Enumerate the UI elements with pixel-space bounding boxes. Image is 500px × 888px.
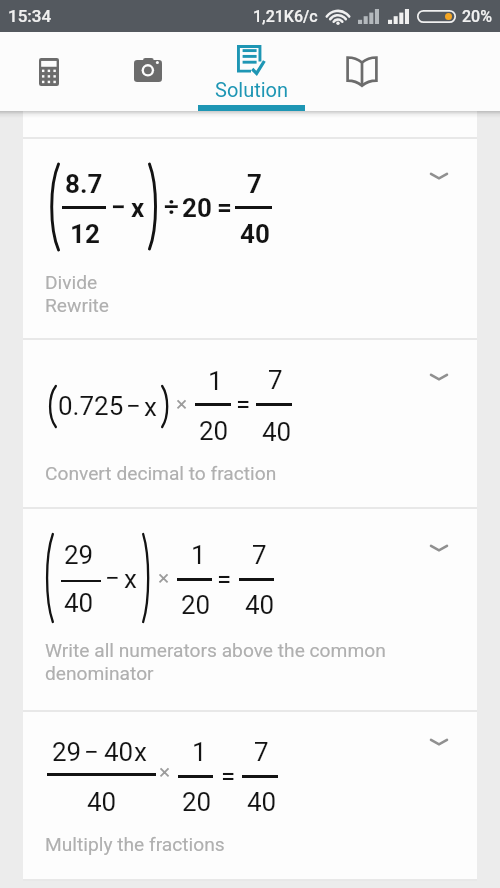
staticText: 12	[70, 219, 100, 249]
staticText: x	[144, 392, 157, 422]
button[interactable]: Dictionary	[305, 32, 418, 111]
button[interactable]: Camera	[98, 32, 198, 111]
staticText: 1	[192, 737, 207, 767]
button[interactable]: Expand step	[425, 363, 453, 391]
staticText: Convert decimal to fraction	[45, 462, 277, 485]
button[interactable]	[23, 139, 477, 338]
staticText: 20%	[462, 7, 492, 26]
staticText: Write all numerators above the common	[45, 639, 386, 662]
staticText: 20	[182, 193, 212, 223]
staticText: 1	[208, 366, 223, 396]
staticText: Divide	[45, 271, 98, 294]
staticText: 20	[182, 787, 212, 817]
staticText: 40	[247, 787, 277, 817]
staticText: 40	[245, 590, 275, 620]
button[interactable]: Calculator	[0, 32, 98, 111]
staticText: x	[131, 193, 145, 223]
button[interactable]	[23, 509, 477, 709]
staticText: Solution	[215, 78, 289, 101]
staticText: 0.725	[58, 391, 124, 421]
button[interactable]	[23, 340, 477, 507]
staticText: 40	[262, 417, 292, 447]
staticText: 20	[199, 416, 229, 446]
button[interactable]: Expand step	[425, 728, 453, 756]
button[interactable]: Expand step	[425, 534, 453, 562]
staticText: 7	[268, 365, 283, 395]
staticText: 1,21K6/c	[253, 7, 318, 26]
staticText: Rewrite	[45, 294, 110, 317]
staticText: x	[134, 737, 147, 767]
staticText: −	[105, 563, 120, 593]
staticText: ×	[158, 566, 170, 591]
staticText: 40	[64, 588, 94, 618]
staticText: −	[84, 737, 99, 767]
staticText: ÷	[164, 192, 179, 222]
button[interactable]	[23, 110, 477, 137]
staticText: −	[126, 391, 141, 421]
staticText: denominator	[45, 662, 154, 685]
staticText: 7	[254, 737, 269, 767]
staticText: 15:34	[8, 6, 52, 26]
staticText: 7	[247, 169, 262, 199]
staticText: 29	[52, 737, 82, 767]
staticText: 20	[181, 590, 211, 620]
staticText: =	[221, 761, 236, 791]
staticText: 40	[104, 737, 134, 767]
staticText: =	[217, 564, 232, 594]
staticText: =	[217, 192, 232, 222]
button[interactable]	[23, 712, 477, 879]
staticText: =	[236, 389, 251, 419]
button[interactable]: Solution	[198, 32, 305, 111]
staticText: ×	[159, 760, 171, 785]
staticText: 7	[252, 540, 267, 570]
button[interactable]: Expand step	[425, 162, 453, 190]
staticText: 1	[191, 540, 206, 570]
staticText: 8.7	[65, 169, 103, 199]
staticText: 40	[240, 219, 270, 249]
staticText: 40	[87, 787, 117, 817]
staticText: −	[111, 192, 126, 222]
staticText: x	[124, 564, 137, 594]
staticText: ×	[176, 392, 188, 417]
staticText: Multiply the fractions	[45, 833, 225, 856]
staticText: 29	[64, 540, 94, 570]
